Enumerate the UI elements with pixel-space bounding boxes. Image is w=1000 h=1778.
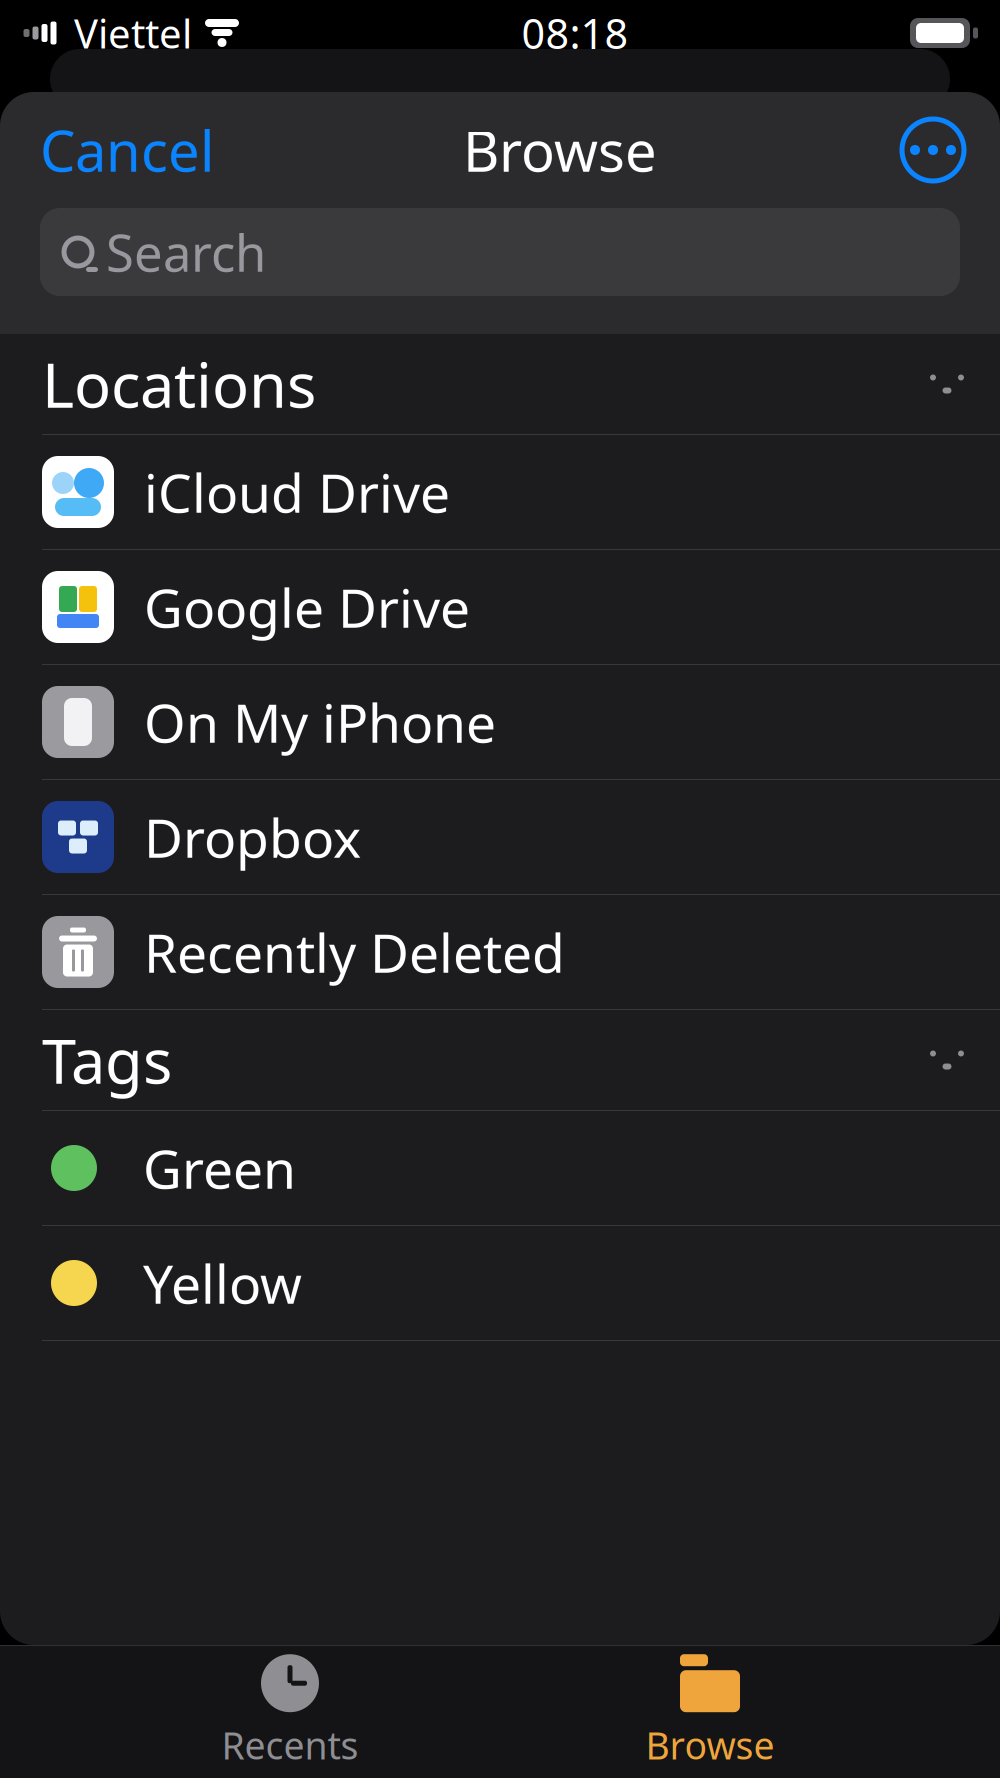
staticText: Browse — [463, 113, 657, 187]
button[interactable]: Recently Deleted — [0, 895, 1000, 1009]
button[interactable]: Cancel — [24, 99, 230, 201]
staticText: Cancel — [40, 113, 214, 187]
button[interactable]: Google Drive — [0, 550, 1000, 664]
button[interactable]: Green — [0, 1111, 1000, 1225]
button[interactable]: Collapse Locations — [916, 353, 978, 415]
staticText: On My iPhone — [144, 687, 496, 757]
staticText: Search — [106, 218, 266, 286]
button[interactable]: Search — [40, 208, 960, 296]
button[interactable]: Collapse Tags — [916, 1029, 978, 1091]
button[interactable]: Yellow — [0, 1226, 1000, 1340]
staticText: Dropbox — [144, 802, 361, 872]
staticText: Browse — [645, 1720, 774, 1770]
staticText: Tags — [42, 1019, 172, 1101]
staticText: Green — [143, 1133, 296, 1203]
button[interactable]: Browse — [580, 1642, 840, 1778]
staticText: Viettel — [74, 6, 192, 59]
staticText: Recents — [221, 1720, 358, 1770]
button[interactable]: iCloud Drive — [0, 435, 1000, 549]
button[interactable]: Dropbox — [0, 780, 1000, 894]
staticText: Google Drive — [144, 572, 470, 642]
button[interactable]: More options — [890, 109, 976, 191]
button[interactable]: On My iPhone — [0, 665, 1000, 779]
button[interactable]: Recents — [160, 1642, 420, 1778]
staticText: Locations — [42, 343, 316, 425]
staticText: Yellow — [143, 1248, 302, 1318]
staticText: Recently Deleted — [144, 917, 565, 987]
staticText: iCloud Drive — [144, 457, 450, 527]
staticText: 08:18 — [521, 6, 628, 60]
